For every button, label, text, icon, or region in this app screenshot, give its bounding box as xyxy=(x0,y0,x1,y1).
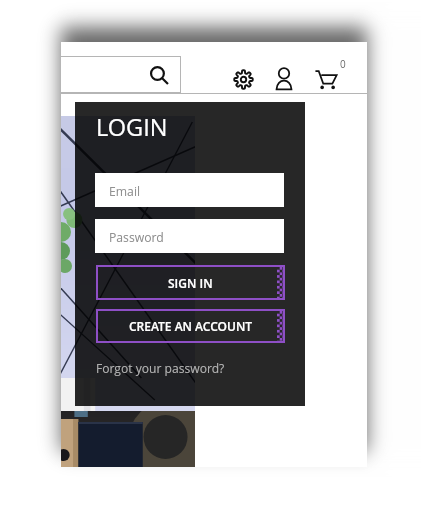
button[interactable]: CREATE AN ACCOUNT xyxy=(96,309,285,343)
button[interactable]: Email xyxy=(95,173,284,207)
button[interactable]: Settings xyxy=(228,64,258,94)
button[interactable]: Search xyxy=(61,56,181,93)
staticText: SIGN IN xyxy=(168,275,213,291)
button[interactable]: Password xyxy=(95,219,284,253)
staticText: CREATE AN ACCOUNT xyxy=(129,318,253,334)
staticText: LOGIN xyxy=(96,111,168,143)
button[interactable]: Account xyxy=(270,61,298,95)
staticText: Password xyxy=(109,229,164,246)
staticText: Email xyxy=(109,183,141,200)
button[interactable]: Shopping cart xyxy=(310,63,341,93)
button[interactable]: Forgot your password? xyxy=(96,360,225,376)
button[interactable]: SIGN IN xyxy=(96,265,285,300)
staticText: 0 xyxy=(340,57,346,71)
